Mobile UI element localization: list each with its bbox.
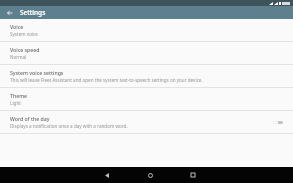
button[interactable]: Back [100, 168, 114, 182]
button[interactable]: Word of the day [0, 111, 293, 133]
button[interactable]: System voice settings [0, 65, 293, 87]
button[interactable]: Home [143, 168, 157, 182]
staticText: Settings [20, 8, 46, 17]
staticText: Theme [10, 92, 28, 99]
staticText: Word of the day [10, 115, 50, 122]
staticText: This will leave Fleet Assistant and open… [10, 77, 203, 83]
staticText: System voice settings [10, 69, 64, 76]
staticText: Displays a notification once a day with … [10, 123, 128, 129]
button[interactable]: Voice speed [0, 42, 293, 64]
button[interactable]: Recent apps [186, 168, 200, 182]
button[interactable]: Theme [0, 88, 293, 110]
staticText: Voice speed [10, 46, 40, 53]
staticText: Light [10, 100, 21, 106]
staticText: System voice [10, 31, 38, 37]
staticText: Voice [10, 23, 24, 30]
button[interactable]: Voice [0, 19, 293, 41]
button[interactable]: Word of the day toggle [271, 117, 285, 127]
button[interactable]: Navigate up [0, 6, 20, 19]
staticText: Normal [10, 54, 27, 60]
